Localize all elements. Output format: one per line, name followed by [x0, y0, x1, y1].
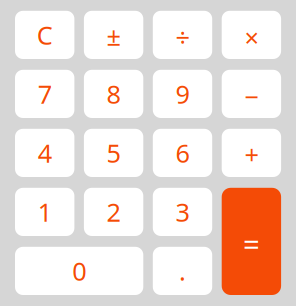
- button[interactable]: Equals: [222, 188, 281, 295]
- staticText: 5: [107, 136, 121, 170]
- staticText: 6: [175, 136, 189, 170]
- staticText: ±: [107, 19, 121, 53]
- staticText: 1: [38, 195, 52, 229]
- button[interactable]: 0: [15, 247, 143, 295]
- button[interactable]: 1: [15, 188, 74, 236]
- button[interactable]: Decimal point: [153, 247, 212, 295]
- staticText: +: [244, 138, 258, 171]
- staticText: ÷: [175, 20, 189, 54]
- staticText: 7: [38, 77, 52, 111]
- button[interactable]: 4: [15, 129, 74, 177]
- staticText: 8: [107, 77, 121, 111]
- staticText: .: [179, 254, 186, 288]
- button[interactable]: Plus minus: [84, 11, 143, 59]
- button[interactable]: Multiply: [222, 11, 281, 59]
- button[interactable]: 8: [84, 70, 143, 118]
- staticText: 4: [38, 136, 52, 170]
- staticText: 2: [107, 195, 121, 229]
- staticText: C: [37, 18, 53, 52]
- staticText: =: [243, 224, 260, 263]
- button[interactable]: 3: [153, 188, 212, 236]
- staticText: 0: [72, 254, 86, 288]
- button[interactable]: 7: [15, 70, 74, 118]
- staticText: 9: [175, 77, 189, 111]
- button[interactable]: Subtract: [222, 70, 281, 118]
- button[interactable]: Divide: [153, 11, 212, 59]
- staticText: 3: [175, 195, 189, 229]
- staticText: ×: [244, 21, 258, 54]
- button[interactable]: Add: [222, 129, 281, 177]
- button[interactable]: 5: [84, 129, 143, 177]
- button[interactable]: Clear: [15, 11, 74, 59]
- staticText: −: [244, 80, 258, 113]
- button[interactable]: 6: [153, 129, 212, 177]
- button[interactable]: 9: [153, 70, 212, 118]
- button[interactable]: 2: [84, 188, 143, 236]
